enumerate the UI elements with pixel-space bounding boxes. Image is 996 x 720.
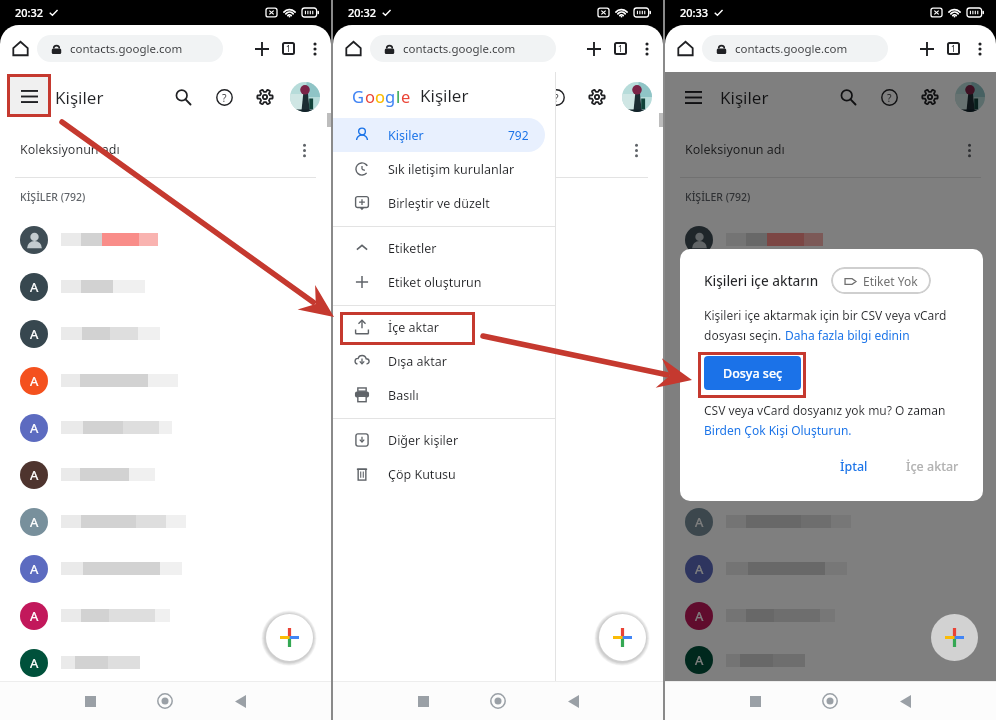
button[interactable]: Menu	[13, 80, 45, 112]
button[interactable]: Diğer kişiler	[333, 423, 545, 457]
staticText: e	[401, 85, 411, 107]
button[interactable]: Etiket oluşturun	[333, 265, 545, 299]
staticText: A	[695, 651, 704, 669]
button[interactable]: Back	[223, 684, 257, 718]
button[interactable]: Home	[148, 684, 182, 718]
button[interactable]: Home	[813, 684, 847, 718]
button[interactable]: Etiketler	[333, 231, 545, 265]
button[interactable]: Back	[888, 684, 922, 718]
button[interactable]: Sık iletişim kurulanlar	[333, 152, 545, 186]
button[interactable]: A	[665, 310, 996, 357]
button[interactable]: contacts.google.com	[370, 35, 556, 62]
button[interactable]: A	[665, 404, 996, 451]
button[interactable]: Account	[290, 82, 320, 112]
button[interactable]: A	[0, 310, 331, 357]
button[interactable]: More options	[967, 36, 992, 61]
button[interactable]: A	[0, 498, 331, 545]
button[interactable]: Dışa aktar	[333, 344, 545, 378]
button[interactable]: Search	[167, 81, 199, 113]
button[interactable]: Search	[832, 81, 864, 113]
button[interactable]: A	[0, 404, 331, 451]
staticText: Çöp Kutusu	[388, 466, 456, 483]
button[interactable]: Create contact	[266, 614, 313, 661]
button[interactable]: contacts.google.com	[37, 35, 223, 62]
button[interactable]: A	[665, 263, 996, 310]
button[interactable]: Settings	[249, 81, 281, 113]
button[interactable]: A	[665, 451, 996, 498]
button[interactable]: New tab	[248, 35, 275, 62]
staticText: contacts.google.com	[70, 41, 183, 57]
button[interactable]: İptal	[832, 454, 876, 479]
button[interactable]: A	[0, 592, 331, 639]
button[interactable]: More	[288, 134, 320, 166]
button[interactable]	[0, 216, 331, 263]
button[interactable]: Account	[955, 82, 985, 112]
button[interactable]: Menu	[677, 81, 709, 113]
button[interactable]: A	[0, 263, 331, 310]
button[interactable]: Home	[7, 35, 34, 62]
staticText: Basılı	[388, 387, 419, 404]
button[interactable]: A	[665, 592, 996, 639]
button[interactable]: Account	[622, 82, 652, 112]
button[interactable]: A	[665, 545, 996, 592]
button[interactable]: Recents	[406, 684, 440, 718]
button[interactable]: New tab	[580, 35, 607, 62]
button[interactable]	[665, 216, 996, 263]
button[interactable]: Recents	[738, 684, 772, 718]
button[interactable]: Recents	[73, 684, 107, 718]
button[interactable]: A	[665, 357, 996, 404]
button[interactable]: Help	[540, 81, 572, 113]
button[interactable]: Settings	[914, 81, 946, 113]
button[interactable]: Home	[340, 35, 367, 62]
button[interactable]: Etiket Yok	[831, 267, 931, 294]
button[interactable]: Kişiler	[333, 118, 545, 152]
staticText: Etiketler	[388, 240, 437, 257]
button[interactable]: Home	[672, 35, 699, 62]
button[interactable]: Back	[556, 684, 590, 718]
button[interactable]: Basılı	[333, 378, 545, 412]
button[interactable]: Help	[208, 81, 240, 113]
staticText: Dosya seç	[723, 365, 783, 382]
staticText: A	[30, 278, 39, 296]
staticText: A	[30, 325, 39, 343]
button[interactable]: Tabs	[940, 35, 967, 62]
button[interactable]: A	[0, 545, 331, 592]
staticText: A	[30, 372, 39, 390]
button[interactable]: More	[953, 134, 985, 166]
button[interactable]: A	[0, 357, 331, 404]
button[interactable]: A	[0, 451, 331, 498]
staticText: A	[30, 560, 39, 578]
button[interactable]: Birleştir ve düzelt	[333, 186, 545, 220]
button[interactable]: Create contact	[599, 614, 646, 661]
button[interactable]: A	[0, 639, 331, 686]
staticText: Kişiler	[388, 127, 424, 144]
button[interactable]: More options	[634, 36, 659, 61]
button[interactable]: İçe aktar	[898, 454, 967, 479]
button[interactable]: Tabs	[275, 35, 302, 62]
button[interactable]: New tab	[913, 35, 940, 62]
staticText: A	[30, 654, 39, 672]
button[interactable]: More options	[302, 36, 327, 61]
button[interactable]: A	[665, 498, 996, 545]
button[interactable]: Tabs	[607, 35, 634, 62]
staticText: KİŞİLER (792)	[20, 190, 86, 204]
button[interactable]: A	[665, 639, 996, 681]
staticText: A	[30, 513, 39, 531]
button[interactable]: Create contact	[931, 614, 978, 661]
button[interactable]: İçe aktar	[333, 310, 545, 344]
button[interactable]: Çöp Kutusu	[333, 457, 545, 491]
staticText: A	[30, 466, 39, 484]
button[interactable]: contacts.google.com	[702, 35, 888, 62]
staticText: A	[30, 419, 39, 437]
button[interactable]: Dosya seç	[704, 356, 801, 390]
button[interactable]: More	[620, 134, 652, 166]
staticText: 1	[951, 43, 956, 54]
button[interactable]: Home	[481, 684, 515, 718]
staticText: Koleksiyonun adı	[685, 141, 785, 158]
button[interactable]: Menu	[12, 81, 44, 113]
button[interactable]: Settings	[581, 81, 613, 113]
staticText: Kişileri içe aktarmak için bir CSV veya …	[704, 307, 947, 323]
button[interactable]: Help	[873, 81, 905, 113]
